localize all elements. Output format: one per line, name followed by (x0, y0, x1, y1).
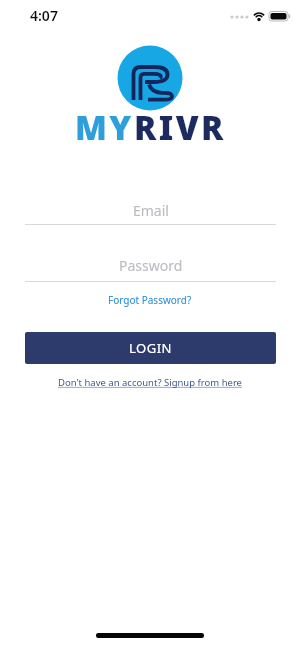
staticText: MY (75, 105, 134, 150)
button[interactable]: Forgot Password? (108, 293, 192, 307)
button[interactable]: LOGIN (25, 332, 276, 364)
staticText: 4:07 (30, 6, 58, 25)
staticText: LOGIN (129, 339, 172, 357)
staticText: Don't have an account? Signup from here (58, 376, 242, 389)
button[interactable]: Email (25, 197, 276, 224)
staticText: Forgot Password? (108, 293, 192, 307)
button[interactable]: Password (25, 252, 276, 279)
button[interactable]: Don't have an account? Signup from here (58, 376, 242, 389)
staticText: Email (133, 201, 169, 220)
staticText: RIVR (134, 105, 226, 150)
staticText: Password (119, 256, 183, 275)
